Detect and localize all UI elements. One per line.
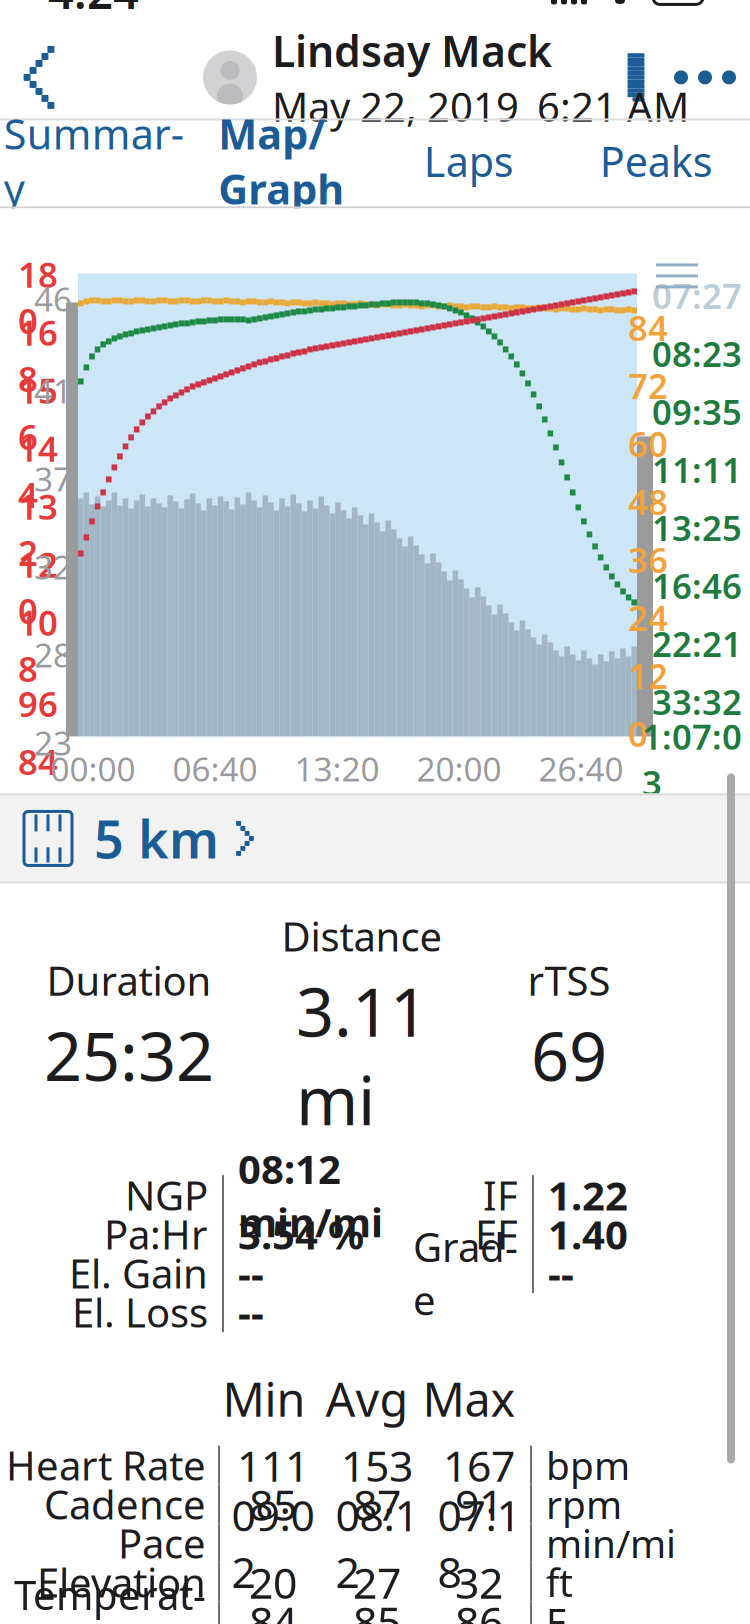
staticText: 72: [628, 362, 668, 408]
staticText: Grade: [413, 1220, 518, 1326]
staticText: 22:21: [652, 620, 742, 666]
staticText: 3.54 %: [238, 1207, 364, 1261]
staticText: 85: [353, 1593, 401, 1624]
staticText: IF: [483, 1168, 518, 1222]
staticText: EF: [475, 1207, 518, 1261]
staticText: 5 km: [94, 804, 219, 873]
staticText: 13:25: [652, 504, 742, 550]
staticText: 111: [237, 1437, 309, 1493]
staticText: Max: [422, 1368, 515, 1430]
staticText: May 22, 2019: [272, 80, 519, 133]
staticText: 27: [353, 1554, 401, 1610]
button[interactable]: Edit workout: [576, 34, 660, 120]
staticText: 84: [18, 738, 58, 784]
staticText: rTSS: [527, 954, 610, 1007]
staticText: --: [238, 1285, 264, 1339]
staticText: 13:20: [294, 746, 379, 791]
staticText: 1.40: [548, 1207, 628, 1261]
staticText: 180: [18, 251, 58, 343]
staticText: 33:32: [652, 678, 742, 724]
staticText: 85: [249, 1476, 297, 1532]
staticText: Laps: [424, 133, 514, 188]
staticText: 24: [628, 594, 668, 640]
staticText: Duration: [46, 954, 211, 1007]
staticText: 6:21 AM: [537, 80, 689, 133]
staticText: Pa:Hr: [104, 1207, 208, 1261]
staticText: 08:12 min/mi: [238, 1142, 383, 1248]
staticText: Avg: [325, 1368, 408, 1430]
button[interactable]: Summary: [0, 120, 187, 208]
staticText: Lindsay Mack: [272, 22, 552, 79]
staticText: 167: [443, 1437, 515, 1493]
staticText: 132: [18, 483, 58, 575]
button[interactable]: More options: [660, 34, 750, 120]
staticText: El. Loss: [72, 1285, 208, 1339]
staticText: 120: [18, 541, 58, 633]
staticText: 32: [455, 1554, 503, 1610]
staticText: 09:35: [652, 388, 742, 434]
staticText: min/mi: [546, 1517, 676, 1569]
staticText: 91: [455, 1476, 503, 1532]
staticText: 3.11 mi: [296, 966, 428, 1144]
staticText: 09:02: [231, 1486, 314, 1600]
staticText: 153: [341, 1437, 413, 1493]
staticText: 36: [628, 536, 668, 582]
staticText: 07:27: [652, 272, 742, 318]
staticText: 60: [628, 420, 668, 466]
staticText: 168: [18, 309, 58, 401]
staticText: ft: [546, 1556, 573, 1608]
staticText: Distance: [281, 909, 442, 962]
button[interactable]: Laps: [375, 120, 562, 208]
button[interactable]: Map/Graph: [187, 120, 375, 208]
staticText: 12: [628, 652, 668, 698]
staticText: 84: [628, 304, 668, 350]
staticText: 86: [455, 1593, 503, 1624]
staticText: 48: [628, 478, 668, 524]
staticText: 08:23: [652, 330, 742, 376]
staticText: 96: [18, 680, 58, 726]
staticText: Min: [222, 1368, 305, 1430]
staticText: 07:18: [437, 1486, 520, 1600]
staticText: Temperature: [14, 1568, 206, 1624]
staticText: --: [238, 1246, 264, 1300]
staticText: 1.22: [548, 1168, 628, 1222]
staticText: Cadence: [44, 1477, 206, 1531]
staticText: NGP: [125, 1168, 208, 1222]
staticText: 08:12: [335, 1486, 418, 1600]
staticText: Map/Graph: [218, 106, 344, 216]
staticText: 46: [34, 276, 72, 321]
staticText: 25:32: [44, 1011, 214, 1099]
staticText: F: [546, 1595, 566, 1624]
staticText: 06:40: [172, 746, 257, 791]
staticText: Pace: [118, 1516, 206, 1570]
staticText: 1:07:03: [642, 713, 742, 805]
button[interactable]: Back: [0, 34, 78, 120]
staticText: rpm: [546, 1478, 622, 1530]
staticText: 23: [34, 720, 72, 765]
staticText: Summary: [4, 106, 184, 216]
staticText: 84: [249, 1593, 297, 1624]
staticText: 37: [34, 456, 72, 501]
staticText: 156: [18, 367, 58, 459]
staticText: 0: [628, 710, 648, 756]
staticText: 87: [353, 1476, 401, 1532]
staticText: 28: [34, 632, 72, 677]
staticText: 69: [531, 1011, 607, 1099]
button[interactable]: Peaks: [562, 120, 750, 208]
staticText: 4:24: [48, 0, 139, 21]
staticText: 16:46: [652, 562, 742, 608]
staticText: El. Gain: [69, 1246, 208, 1300]
staticText: 18: [34, 808, 72, 853]
staticText: 41: [34, 368, 72, 413]
staticText: bpm: [546, 1439, 630, 1491]
staticText: 144: [18, 425, 58, 517]
button[interactable]: 5 km: [0, 793, 750, 883]
staticText: 32: [34, 544, 72, 589]
staticText: --: [548, 1246, 574, 1300]
staticText: 20: [249, 1554, 297, 1610]
staticText: 20:00: [416, 746, 501, 791]
staticText: 26:40: [538, 746, 623, 791]
staticText: 00:00: [50, 746, 135, 791]
staticText: 108: [18, 599, 58, 691]
staticText: 11:11: [652, 446, 742, 492]
